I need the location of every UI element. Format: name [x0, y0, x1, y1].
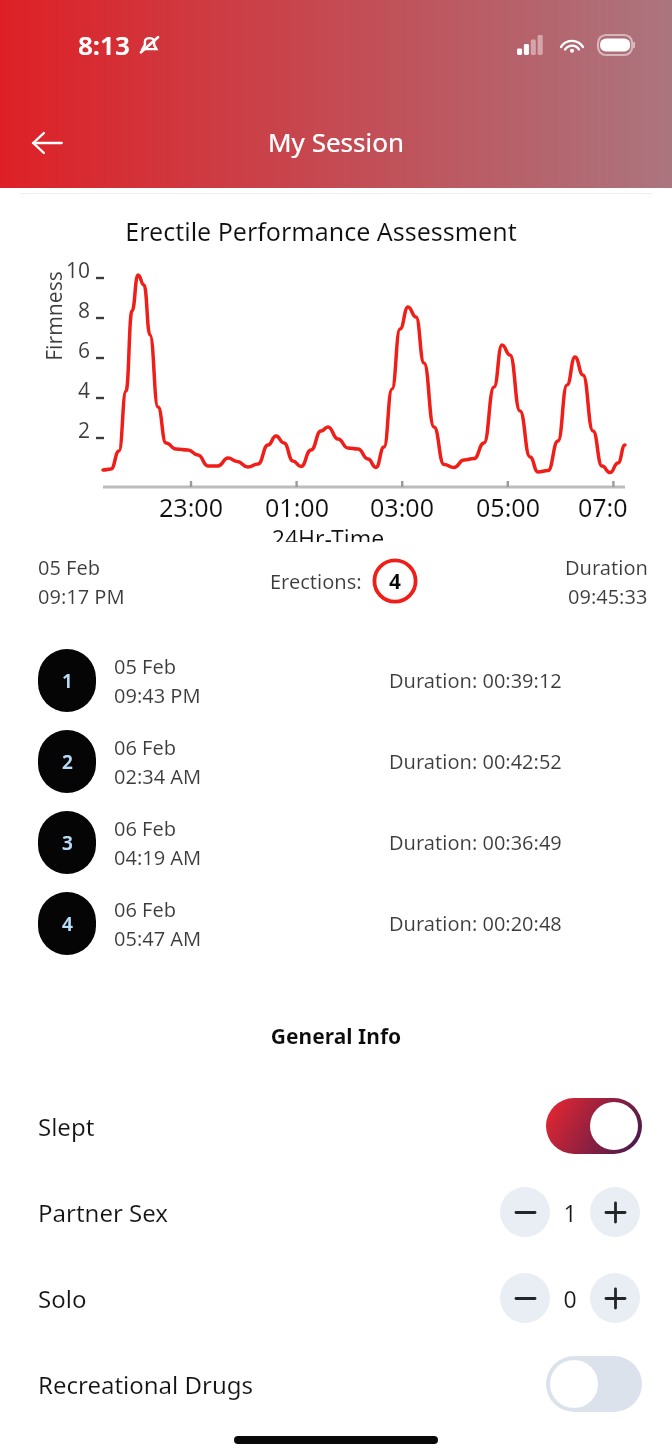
- staticText: 05:00: [454, 490, 562, 524]
- staticText: Duration: 00:36:49: [389, 829, 562, 856]
- staticText: 09:17 PM: [38, 583, 125, 610]
- staticText: 4: [62, 911, 73, 937]
- staticText: General Info: [0, 1022, 672, 1051]
- button[interactable]: 2: [0, 721, 672, 802]
- button[interactable]: Increase Partner Sex: [590, 1187, 640, 1237]
- staticText: 8:13: [78, 27, 130, 62]
- button[interactable]: Slept: [0, 1083, 672, 1169]
- button[interactable]: 4: [0, 883, 672, 964]
- staticText: 23:00: [137, 490, 245, 524]
- staticText: 24Hr-Time: [0, 522, 656, 542]
- staticText: 1: [62, 668, 73, 694]
- staticText: Recreational Drugs: [38, 1368, 254, 1401]
- staticText: Duration: [565, 554, 648, 581]
- button[interactable]: Back: [22, 118, 72, 168]
- staticText: Firmness: [40, 261, 68, 371]
- staticText: Slept: [38, 1110, 95, 1143]
- staticText: 03:00: [348, 490, 456, 524]
- staticText: 09:43 PM: [114, 682, 201, 709]
- staticText: 1: [550, 1197, 590, 1228]
- button[interactable]: Recreational Drugs: [0, 1341, 672, 1427]
- button[interactable]: 3: [0, 802, 672, 883]
- staticText: Duration: 00:20:48: [389, 910, 562, 937]
- staticText: 05 Feb: [114, 653, 177, 680]
- staticText: 10: [58, 256, 90, 285]
- staticText: 2: [58, 416, 90, 445]
- staticText: My Session: [0, 124, 672, 159]
- staticText: Partner Sex: [38, 1196, 169, 1229]
- staticText: Solo: [38, 1282, 87, 1315]
- staticText: 8: [58, 296, 90, 325]
- staticText: Erectile Performance Assessment: [0, 214, 642, 248]
- staticText: 4: [58, 376, 90, 405]
- staticText: 06 Feb: [114, 896, 177, 923]
- staticText: 04:19 AM: [114, 844, 202, 871]
- staticText: 05 Feb: [38, 554, 101, 581]
- staticText: 09:45:33: [568, 583, 648, 610]
- staticText: 06 Feb: [114, 815, 177, 842]
- staticText: Erections:: [270, 568, 362, 595]
- staticText: 07:0: [578, 490, 628, 524]
- button[interactable]: Increase Solo: [590, 1273, 640, 1323]
- staticText: 0: [550, 1283, 590, 1314]
- staticText: Duration: 00:39:12: [389, 667, 562, 694]
- staticText: 06 Feb: [114, 734, 177, 761]
- staticText: 2: [62, 749, 73, 775]
- staticText: Duration: 00:42:52: [389, 748, 562, 775]
- staticText: 4: [389, 567, 402, 596]
- staticText: 05:47 AM: [114, 925, 202, 952]
- button[interactable]: Decrease Solo: [500, 1273, 550, 1323]
- staticText: 3: [62, 830, 73, 856]
- staticText: 01:00: [243, 490, 351, 524]
- staticText: 02:34 AM: [114, 763, 202, 790]
- button[interactable]: 1: [0, 640, 672, 721]
- staticText: 6: [58, 336, 90, 365]
- button[interactable]: Decrease Partner Sex: [500, 1187, 550, 1237]
